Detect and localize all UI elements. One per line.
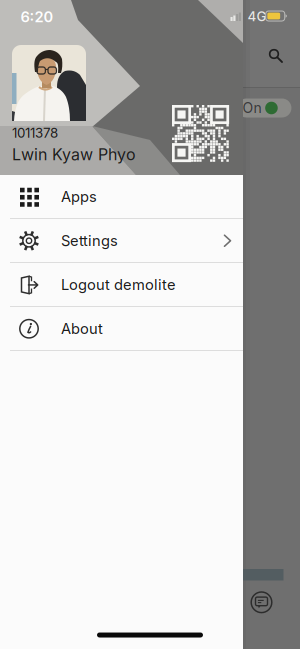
staticText: Logout demolite — [61, 276, 176, 294]
staticText: 6:20 — [20, 8, 53, 26]
button[interactable]: Apps — [0, 175, 243, 219]
staticText: Apps — [61, 188, 97, 206]
staticText: About — [61, 320, 103, 338]
button[interactable]: Search — [259, 41, 289, 69]
button[interactable]: Chat — [251, 591, 273, 613]
staticText: Settings — [61, 232, 118, 250]
staticText: 1011378 — [12, 125, 58, 141]
button[interactable]: About — [0, 307, 243, 351]
button[interactable]: On — [237, 98, 291, 117]
staticText: Lwin Kyaw Phyo — [12, 145, 136, 164]
staticText: On — [242, 99, 261, 116]
button[interactable]: Logout demolite — [0, 263, 243, 307]
staticText: 4G — [247, 8, 266, 24]
button[interactable]: Settings — [0, 219, 243, 263]
